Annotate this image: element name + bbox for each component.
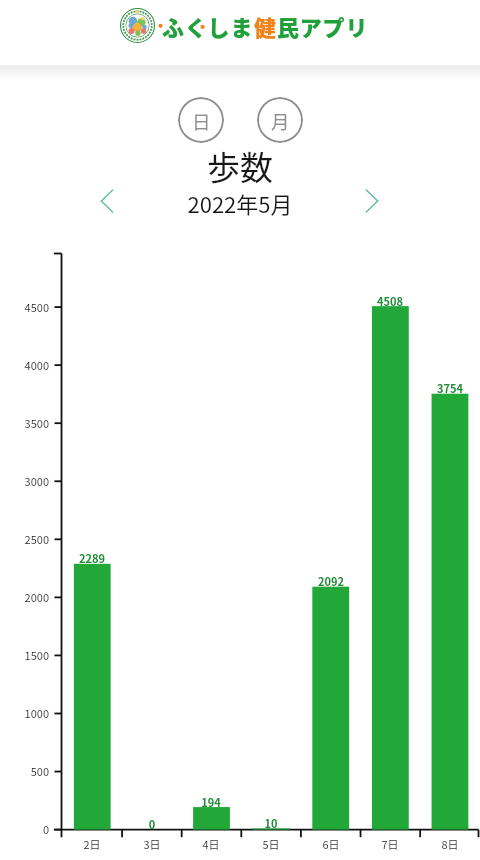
staticText: 7日 bbox=[360, 836, 420, 852]
staticText: 6日 bbox=[301, 836, 361, 852]
staticText: 3000 bbox=[0, 473, 49, 489]
staticText: 2289 bbox=[62, 550, 122, 566]
staticText: 0 bbox=[0, 821, 49, 837]
staticText: 歩数 bbox=[0, 142, 480, 190]
staticText: 0 bbox=[122, 816, 182, 832]
staticText: 月 bbox=[271, 108, 290, 135]
staticText: 8日 bbox=[420, 836, 480, 852]
staticText: 4000 bbox=[0, 357, 49, 373]
staticText: 民アプリ bbox=[277, 10, 369, 42]
staticText: 1500 bbox=[0, 647, 49, 663]
staticText: 日 bbox=[192, 108, 211, 135]
staticText: 1000 bbox=[0, 705, 49, 721]
staticText: 4508 bbox=[360, 293, 420, 309]
staticText: 500 bbox=[0, 763, 49, 779]
button[interactable]: Next month bbox=[355, 184, 389, 218]
staticText: 2000 bbox=[0, 589, 49, 605]
staticText: 2092 bbox=[301, 573, 361, 589]
staticText: 194 bbox=[181, 794, 241, 810]
staticText: ふくしま bbox=[162, 10, 254, 42]
staticText: 3500 bbox=[0, 415, 49, 431]
button[interactable]: Previous month bbox=[90, 184, 124, 218]
staticText: 10 bbox=[241, 815, 301, 831]
button[interactable]: 日 bbox=[178, 97, 224, 143]
staticText: 3日 bbox=[122, 836, 182, 852]
staticText: 3754 bbox=[420, 380, 480, 396]
staticText: 2500 bbox=[0, 531, 49, 547]
staticText: 2日 bbox=[62, 836, 122, 852]
staticText: 5日 bbox=[241, 836, 301, 852]
button[interactable]: 月 bbox=[257, 97, 303, 143]
staticText: 4日 bbox=[181, 836, 241, 852]
staticText: 4500 bbox=[0, 299, 49, 315]
staticText: 2022年5月 bbox=[0, 187, 480, 219]
staticText: 健 bbox=[254, 10, 277, 42]
